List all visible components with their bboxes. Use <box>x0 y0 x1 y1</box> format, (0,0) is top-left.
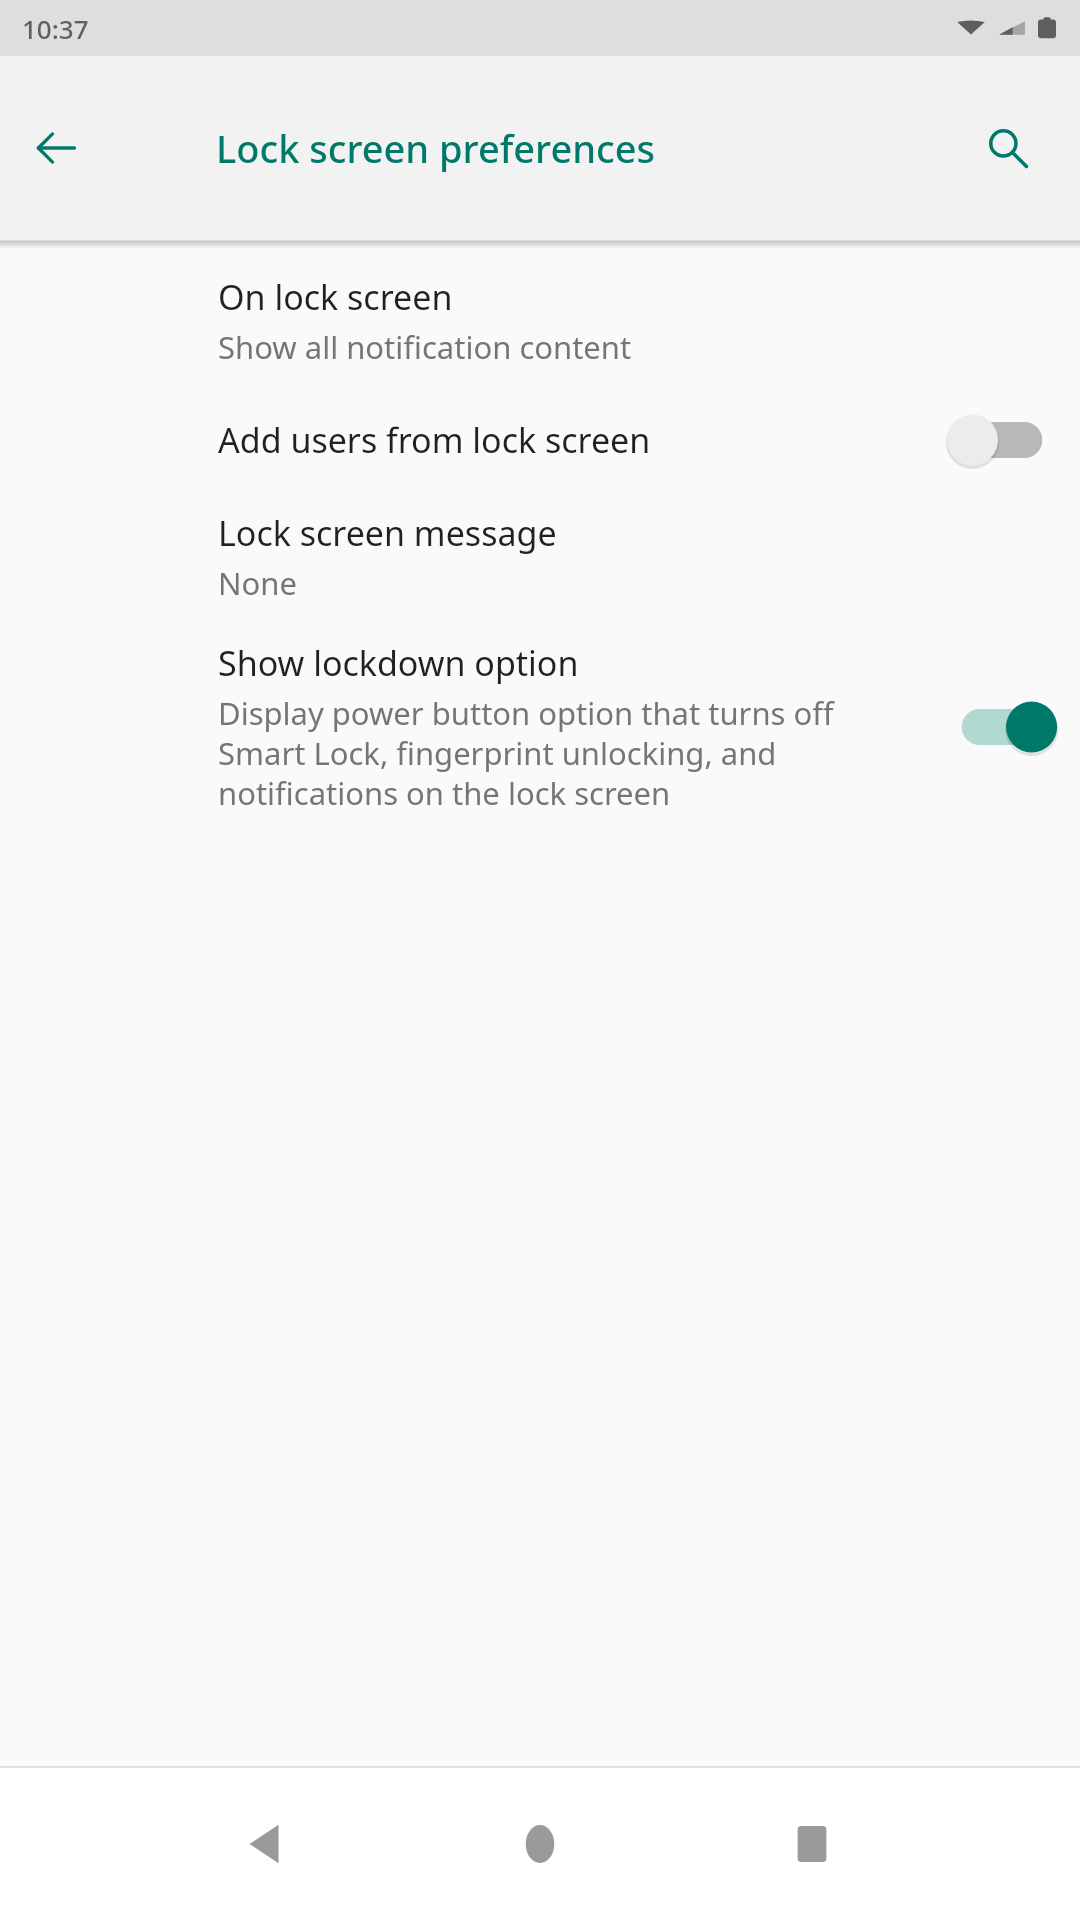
button[interactable]: Search <box>972 112 1044 184</box>
staticText: Show lockdown option <box>218 640 579 686</box>
button[interactable]: Back <box>20 112 92 184</box>
button[interactable]: Show lockdown option <box>0 634 1080 820</box>
button[interactable]: Off <box>946 404 1058 476</box>
button[interactable]: On <box>946 691 1058 763</box>
staticText: Add users from lock screen <box>218 417 651 463</box>
staticText: Show all notification content <box>218 326 632 368</box>
staticText: On lock screen <box>218 274 453 320</box>
button[interactable]: Recents <box>762 1794 862 1894</box>
button[interactable]: Back <box>218 1794 318 1894</box>
button[interactable]: Add users from lock screen <box>0 398 1080 482</box>
button[interactable]: Lock screen message <box>0 504 1080 610</box>
button[interactable]: Home <box>490 1794 590 1894</box>
staticText: Lock screen preferences <box>216 122 656 174</box>
staticText: Display power button option that turns o… <box>218 692 926 814</box>
staticText: Lock screen message <box>218 510 557 556</box>
button[interactable]: On lock screen <box>0 268 1080 374</box>
staticText: 10:37 <box>22 11 89 46</box>
staticText: None <box>218 562 297 604</box>
